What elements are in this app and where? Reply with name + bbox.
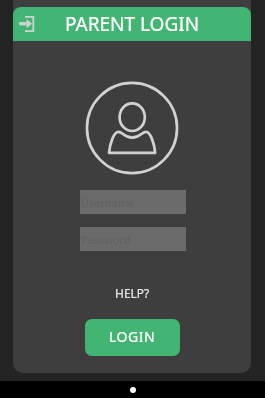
- button[interactable]: LOGIN: [85, 319, 180, 356]
- staticText: Password: [81, 232, 131, 247]
- staticText: Username: [81, 195, 135, 210]
- button[interactable]: Login: [13, 10, 41, 38]
- button[interactable]: HELP?: [108, 284, 156, 302]
- staticText: PARENT LOGIN: [65, 11, 200, 37]
- staticText: LOGIN: [109, 327, 156, 346]
- staticText: HELP?: [115, 285, 150, 301]
